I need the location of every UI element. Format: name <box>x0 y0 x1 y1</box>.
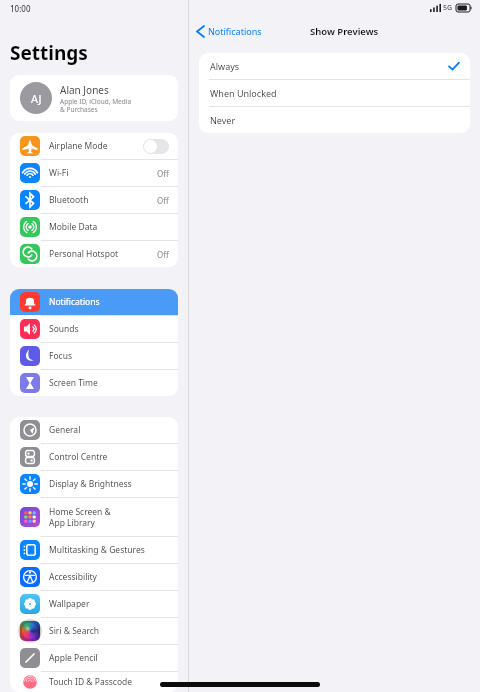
staticText: Home Screen & App Library <box>49 506 169 528</box>
button[interactable]: Notifications <box>10 289 178 315</box>
button[interactable]: Airplane Mode toggle <box>143 139 169 154</box>
button[interactable]: Focus <box>10 343 178 369</box>
staticText: Always <box>210 60 449 72</box>
staticText: Multitasking & Gestures <box>49 544 169 556</box>
button[interactable]: Touch ID & Passcode <box>10 672 178 692</box>
staticText: Settings <box>10 40 88 66</box>
staticText: Siri & Search <box>49 625 169 637</box>
staticText: Apple ID, iCloud, Media & Purchases <box>60 97 132 114</box>
staticText: Wallpaper <box>49 598 169 610</box>
button[interactable]: Screen Time <box>10 370 178 396</box>
button[interactable]: Multitasking & Gestures <box>10 537 178 563</box>
staticText: Wi-Fi <box>49 167 157 179</box>
staticText: Bluetooth <box>49 194 157 206</box>
button[interactable]: When Unlocked <box>199 80 470 106</box>
button[interactable]: Accessibility <box>10 564 178 590</box>
button[interactable]: Wallpaper <box>10 591 178 617</box>
staticText: Notifications <box>49 296 169 308</box>
staticText: General <box>49 424 169 436</box>
staticText: Display & Brightness <box>49 478 169 490</box>
button[interactable]: Siri & Search <box>10 618 178 644</box>
button[interactable]: Apple Pencil <box>10 645 178 671</box>
staticText: 5G <box>443 3 453 13</box>
staticText: Touch ID & Passcode <box>49 676 169 688</box>
button[interactable]: Control Centre <box>10 444 178 470</box>
button[interactable]: Airplane Mode <box>10 133 178 159</box>
staticText: Sounds <box>49 323 169 335</box>
staticText: Notifications <box>208 25 262 37</box>
button[interactable]: Always <box>199 53 470 79</box>
button[interactable]: Wi-Fi <box>10 160 178 186</box>
button[interactable]: Home Screen & App Library <box>10 498 178 536</box>
staticText: When Unlocked <box>210 87 459 99</box>
staticText: Accessibility <box>49 571 169 583</box>
staticText: Off <box>157 168 169 179</box>
staticText: Airplane Mode <box>49 140 143 152</box>
staticText: Off <box>157 249 169 260</box>
button[interactable]: Mobile Data <box>10 214 178 240</box>
button[interactable]: AJ <box>10 75 178 121</box>
staticText: Focus <box>49 350 169 362</box>
staticText: Never <box>210 114 459 126</box>
button[interactable]: Never <box>199 107 470 133</box>
button[interactable]: General <box>10 417 178 443</box>
staticText: Mobile Data <box>49 221 169 233</box>
staticText: Show Previews <box>310 25 379 38</box>
button[interactable]: Display & Brightness <box>10 471 178 497</box>
staticText: Personal Hotspot <box>49 248 157 260</box>
staticText: Alan Jones <box>60 83 109 97</box>
button[interactable]: Sounds <box>10 316 178 342</box>
staticText: Screen Time <box>49 377 169 389</box>
staticText: Off <box>157 195 169 206</box>
button[interactable]: Notifications <box>189 21 268 41</box>
button[interactable]: Personal Hotspot <box>10 241 178 267</box>
button[interactable]: Bluetooth <box>10 187 178 213</box>
staticText: AJ <box>31 91 42 106</box>
staticText: 10:00 <box>10 3 31 14</box>
staticText: Apple Pencil <box>49 652 169 664</box>
staticText: Control Centre <box>49 451 169 463</box>
